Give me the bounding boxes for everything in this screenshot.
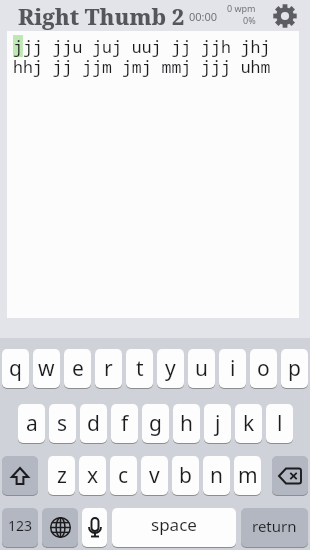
button[interactable]: r (95, 349, 122, 388)
staticText: y (165, 354, 176, 383)
button[interactable]: y (157, 349, 184, 388)
button[interactable] (42, 508, 78, 547)
button[interactable]: i (219, 349, 246, 388)
staticText: r (104, 354, 113, 383)
button[interactable]: h (173, 404, 200, 443)
button[interactable]: n (203, 456, 230, 495)
button[interactable]: z (48, 456, 75, 495)
staticText: space (151, 513, 197, 536)
button[interactable]: e (64, 349, 91, 388)
button[interactable] (82, 508, 107, 547)
staticText: 123 (8, 516, 33, 535)
staticText: u (195, 354, 208, 383)
staticText: return (252, 516, 297, 536)
staticText: s (57, 409, 68, 438)
staticText: x (87, 461, 99, 490)
staticText: a (26, 409, 38, 438)
staticText: Right Thumb 2 (18, 1, 185, 31)
button[interactable] (273, 4, 297, 28)
button[interactable]: s (49, 404, 76, 443)
staticText: g (149, 409, 162, 438)
staticText: c (118, 461, 129, 490)
staticText: h (180, 409, 193, 438)
button[interactable]: b (172, 456, 199, 495)
staticText: f (121, 409, 129, 438)
button[interactable] (2, 456, 38, 495)
staticText: d (87, 409, 100, 438)
button[interactable]: a (18, 404, 45, 443)
staticText: i (230, 354, 236, 383)
staticText: e (72, 354, 84, 383)
button[interactable]: d (80, 404, 107, 443)
staticText: v (149, 461, 160, 490)
staticText: l (277, 409, 283, 438)
button[interactable]: x (79, 456, 106, 495)
button[interactable]: space (112, 508, 236, 547)
button[interactable]: l (266, 404, 293, 443)
button[interactable]: j (204, 404, 231, 443)
button[interactable]: f (111, 404, 138, 443)
staticText: m (238, 461, 258, 490)
staticText: t (136, 354, 144, 383)
staticText: q (9, 354, 22, 383)
button[interactable]: c (110, 456, 137, 495)
staticText: 00:00 (189, 9, 218, 24)
staticText: b (179, 461, 192, 490)
button[interactable]: t (126, 349, 153, 388)
button[interactable]: q (2, 349, 29, 388)
button[interactable]: k (235, 404, 262, 443)
button[interactable]: m (234, 456, 261, 495)
staticText: k (243, 409, 255, 438)
staticText: z (57, 461, 67, 490)
button[interactable]: return (241, 508, 308, 547)
staticText: o (257, 354, 270, 383)
staticText: p (288, 354, 301, 383)
button[interactable]: g (142, 404, 169, 443)
staticText: 0 wpm (227, 2, 256, 14)
staticText: n (210, 461, 223, 490)
button[interactable]: 123 (2, 508, 38, 547)
staticText: 0% (243, 14, 256, 26)
staticText: jjj jju juj uuj jj jjh jhj hhj jj jjm jm… (13, 35, 271, 78)
button[interactable]: u (188, 349, 215, 388)
button[interactable]: o (250, 349, 277, 388)
button[interactable]: p (281, 349, 308, 388)
staticText: j (215, 409, 221, 438)
staticText: w (38, 354, 55, 383)
button[interactable]: v (141, 456, 168, 495)
button[interactable]: w (33, 349, 60, 388)
button[interactable] (272, 456, 308, 495)
